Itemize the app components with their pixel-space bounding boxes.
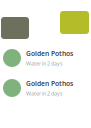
button[interactable]: Golden Pothos <box>0 46 91 70</box>
staticText: Water in 2 days <box>26 90 63 97</box>
staticText: Water in 2 days <box>26 60 63 67</box>
staticText: Golden Pothos <box>26 49 73 58</box>
staticText: Golden Pothos <box>26 79 73 88</box>
button[interactable]: Golden Pothos <box>0 76 91 100</box>
